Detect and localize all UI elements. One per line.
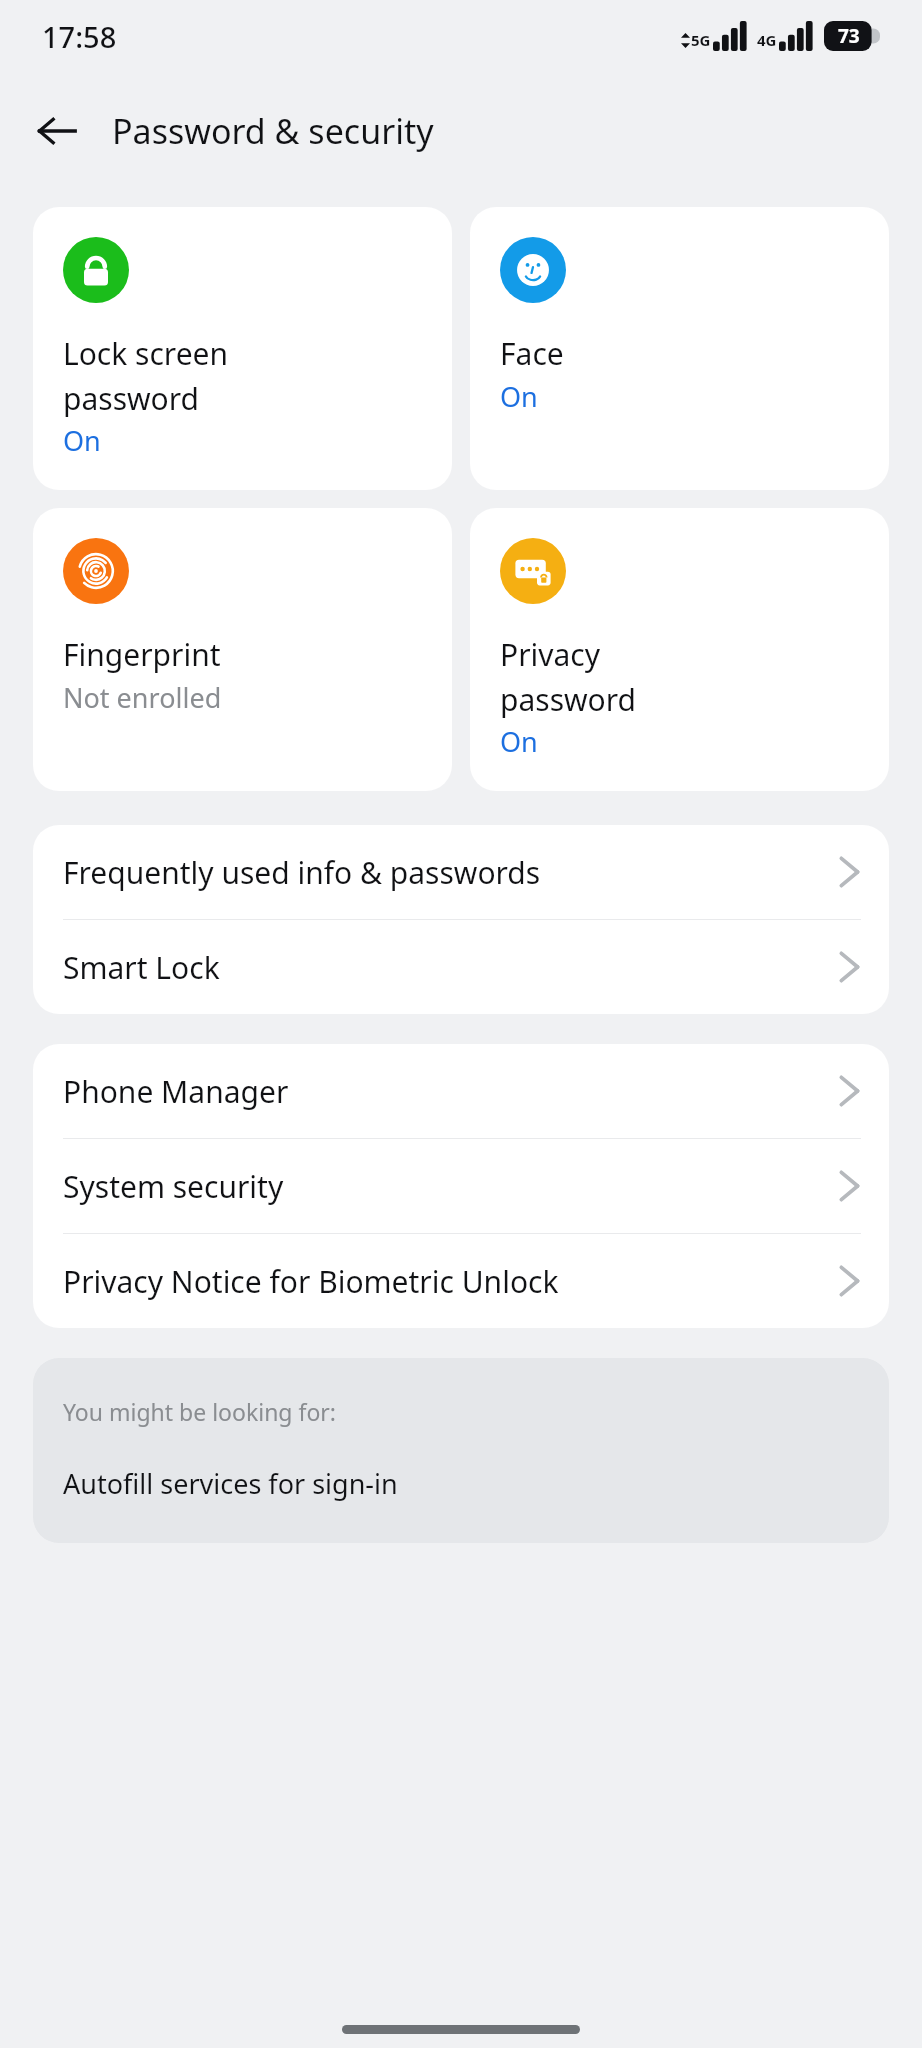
button[interactable]: Privacy Notice for Biometric Unlock bbox=[33, 1234, 889, 1328]
staticText: Smart Lock bbox=[63, 947, 837, 988]
staticText: Not enrolled bbox=[63, 679, 222, 716]
button[interactable]: Fingerprint bbox=[33, 508, 452, 791]
staticText: You might be looking for: bbox=[63, 1396, 336, 1427]
button[interactable]: Lock screen password bbox=[33, 207, 452, 490]
staticText: Autofill services for sign-in bbox=[63, 1465, 398, 1502]
staticText: Frequently used info & passwords bbox=[63, 852, 837, 893]
button[interactable]: System security bbox=[33, 1139, 889, 1233]
staticText: 5G bbox=[691, 30, 711, 50]
button[interactable]: Privacy password bbox=[470, 508, 889, 791]
button[interactable]: Smart Lock bbox=[33, 920, 889, 1014]
staticText: Phone Manager bbox=[63, 1071, 837, 1112]
button[interactable]: Frequently used info & passwords bbox=[33, 825, 889, 919]
button[interactable]: Face bbox=[470, 207, 889, 490]
staticText: 4G bbox=[757, 30, 777, 50]
staticText: Lock screen password bbox=[63, 333, 229, 418]
staticText: Fingerprint bbox=[63, 634, 221, 675]
staticText: Face bbox=[500, 333, 564, 374]
staticText: System security bbox=[63, 1166, 837, 1207]
staticText: Privacy password bbox=[500, 634, 636, 719]
staticText: Privacy Notice for Biometric Unlock bbox=[63, 1261, 837, 1302]
button[interactable]: Autofill services for sign-in bbox=[33, 1465, 889, 1502]
button[interactable]: Phone Manager bbox=[33, 1044, 889, 1138]
staticText: 17:58 bbox=[42, 17, 117, 56]
staticText: Password & security bbox=[112, 108, 434, 154]
staticText: 73 bbox=[838, 23, 860, 49]
button[interactable]: Back bbox=[26, 100, 88, 162]
staticText: On bbox=[500, 723, 538, 760]
staticText: On bbox=[500, 378, 538, 415]
staticText: On bbox=[63, 422, 101, 459]
